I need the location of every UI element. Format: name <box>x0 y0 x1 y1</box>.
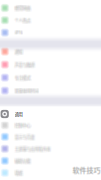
staticText: 声音与触感 <box>15 61 35 67</box>
staticText: 专注模式 <box>14 75 30 81</box>
staticText: 通知 <box>15 49 23 55</box>
staticText: 屏幕使用时间 <box>15 87 39 93</box>
staticText: 通知 <box>14 48 22 54</box>
staticText: 软件技巧 <box>73 164 101 174</box>
staticText: 辅助功能 <box>14 157 30 163</box>
staticText: 蜂窝网络 <box>15 5 31 11</box>
staticText: 软件技巧 <box>72 165 100 175</box>
button[interactable]: 专注模式 <box>0 71 101 84</box>
staticText: 专注模式 <box>15 74 31 81</box>
staticText: 显示与亮度 <box>15 133 35 139</box>
staticText: 控制中心 <box>15 123 31 129</box>
staticText: VPN <box>15 29 23 35</box>
staticText: 个人热点 <box>14 17 30 23</box>
staticText: 辅助功能 <box>14 158 30 164</box>
button[interactable]: 屏幕使用时间 <box>0 84 101 97</box>
staticText: 个人热点 <box>15 18 31 24</box>
staticText: VPN <box>15 29 23 35</box>
staticText: 主屏幕与应用程序库 <box>15 146 51 152</box>
staticText: 主屏幕与应用程序库 <box>15 146 51 152</box>
button[interactable]: 显示与亮度 <box>0 131 101 143</box>
button[interactable]: 主屏幕与应用程序库 <box>0 143 101 155</box>
staticText: 墙纸 <box>15 170 23 176</box>
staticText: 声音与触感 <box>15 61 35 68</box>
button[interactable]: 控制中心 <box>0 119 101 131</box>
staticText: VPN <box>14 29 22 36</box>
staticText: 控制中心 <box>15 123 31 129</box>
staticText: 屏幕使用时间 <box>14 87 38 93</box>
staticText: 专注模式 <box>15 75 31 81</box>
button[interactable]: 辅助功能 <box>0 155 101 167</box>
staticText: 主屏幕与应用程序库 <box>14 145 50 151</box>
staticText: 声音与触感 <box>15 61 35 68</box>
staticText: 辅助功能 <box>14 158 30 165</box>
button[interactable]: 墙纸 <box>0 167 101 179</box>
staticText: 墙纸 <box>15 169 23 175</box>
button[interactable]: 个人热点 <box>0 14 101 26</box>
staticText: 蜂窝网络 <box>15 5 31 11</box>
staticText: 显示与亮度 <box>14 134 34 141</box>
staticText: 控制中心 <box>15 121 31 127</box>
staticText: 主屏幕与应用程序库 <box>15 146 51 153</box>
staticText: VPN <box>15 29 23 36</box>
staticText: 声音与触感 <box>15 61 35 67</box>
staticText: 专注模式 <box>15 74 31 80</box>
staticText: 墙纸 <box>15 170 23 177</box>
staticText: 墙纸 <box>14 170 22 177</box>
staticText: 声音与触感 <box>14 61 34 68</box>
staticText: 通知 <box>15 49 23 55</box>
staticText: 显示与亮度 <box>14 134 34 140</box>
staticText: 声音与触感 <box>14 62 34 68</box>
staticText: 个人热点 <box>14 18 30 24</box>
staticText: 专注模式 <box>14 74 30 81</box>
staticText: 软件技巧 <box>72 164 100 174</box>
staticText: 通知 <box>14 48 22 55</box>
staticText: 主屏幕与应用程序库 <box>14 146 50 152</box>
staticText: 专注模式 <box>15 74 31 81</box>
staticText: 主屏幕与应用程序库 <box>15 145 51 151</box>
staticText: 蜂窝网络 <box>15 4 31 10</box>
staticText: 墙纸 <box>14 170 22 176</box>
staticText: 辅助功能 <box>15 158 31 164</box>
staticText: 屏幕使用时间 <box>15 88 39 94</box>
staticText: 蜂窝网络 <box>15 6 31 12</box>
staticText: 主屏幕与应用程序库 <box>15 146 51 153</box>
staticText: 辅助功能 <box>15 158 31 165</box>
staticText: 屏幕使用时间 <box>15 87 39 94</box>
staticText: 蜂窝网络 <box>14 5 30 11</box>
staticText: 通知 <box>15 48 23 54</box>
staticText: 个人热点 <box>15 17 31 23</box>
staticText: 辅助功能 <box>15 158 31 164</box>
button[interactable]: 声音与触感 <box>0 58 101 71</box>
staticText: 通知 <box>15 48 23 54</box>
staticText: 显示与亮度 <box>14 133 34 139</box>
staticText: 软件技巧 <box>73 165 101 175</box>
staticText: 声音与触感 <box>15 62 35 68</box>
staticText: 软件技巧 <box>72 165 100 175</box>
button[interactable]: 通用 <box>0 106 101 121</box>
staticText: VPN <box>15 30 23 36</box>
staticText: 专注模式 <box>14 74 30 80</box>
staticText: 软件技巧 <box>72 165 100 175</box>
staticText: 声音与触感 <box>14 61 34 67</box>
staticText: 显示与亮度 <box>15 134 35 140</box>
staticText: 通用 <box>15 111 23 117</box>
button[interactable]: VPN <box>0 26 101 39</box>
staticText: 个人热点 <box>14 16 30 22</box>
staticText: 通知 <box>15 48 23 55</box>
staticText: 墙纸 <box>15 170 23 177</box>
staticText: 显示与亮度 <box>15 133 35 139</box>
staticText: 通知 <box>15 48 23 55</box>
staticText: 辅助功能 <box>15 157 31 163</box>
button[interactable]: 蜂窝网络 <box>0 2 101 14</box>
staticText: 墙纸 <box>14 169 22 175</box>
button[interactable]: 通知 <box>0 45 101 58</box>
staticText: 个人热点 <box>15 17 31 23</box>
staticText: VPN <box>15 30 23 36</box>
staticText: 个人热点 <box>15 16 31 22</box>
staticText: 显示与亮度 <box>15 134 35 141</box>
staticText: VPN <box>14 30 22 36</box>
staticText: 墙纸 <box>15 170 23 176</box>
staticText: 蜂窝网络 <box>15 4 31 10</box>
staticText: 软件技巧 <box>72 164 100 174</box>
